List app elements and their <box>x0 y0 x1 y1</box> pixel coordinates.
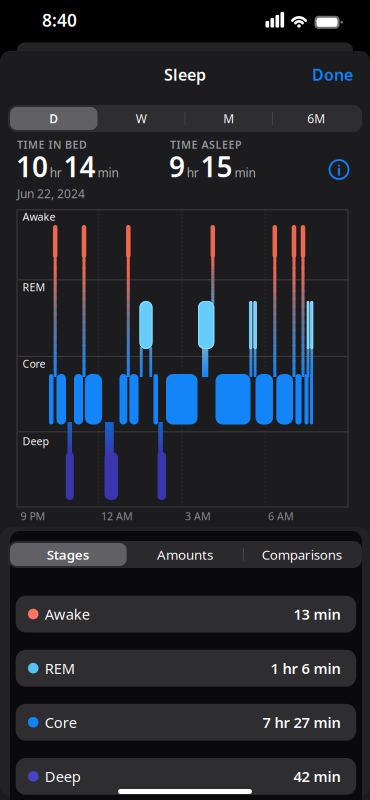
staticText: 9 <box>169 148 185 185</box>
button[interactable]: About Sleep <box>328 158 350 180</box>
staticText: 7 hr 27 min <box>262 713 340 732</box>
staticText: Amounts <box>157 546 213 563</box>
staticText: Stages <box>47 546 90 563</box>
button[interactable]: D <box>10 105 97 132</box>
button[interactable]: REM <box>16 650 356 687</box>
staticText: W <box>136 110 147 126</box>
staticText: Core <box>45 713 77 732</box>
button[interactable]: Stages <box>10 541 127 568</box>
button[interactable]: Deep <box>16 758 356 795</box>
staticText: Sleep <box>164 64 206 85</box>
staticText: Awake <box>45 604 90 624</box>
button[interactable]: Awake <box>16 596 356 632</box>
staticText: D <box>49 110 58 126</box>
staticText: 8:40 <box>42 8 77 31</box>
button[interactable]: 6M <box>272 105 360 132</box>
staticText: Deep <box>45 767 81 786</box>
staticText: 10 <box>16 148 48 185</box>
staticText: Awake <box>22 209 55 224</box>
staticText: Deep <box>22 434 49 448</box>
staticText: 6M <box>307 110 325 126</box>
button[interactable]: Amounts <box>127 541 243 568</box>
staticText: min <box>97 165 118 181</box>
staticText: 13 min <box>293 604 340 624</box>
staticText: min <box>234 165 255 181</box>
staticText: TIME ASLEEP <box>170 137 242 152</box>
button[interactable]: Core <box>16 704 356 741</box>
staticText: Core <box>22 356 45 371</box>
staticText: hr <box>187 165 199 181</box>
staticText: M <box>223 110 234 126</box>
staticText: Jun 22, 2024 <box>17 185 85 201</box>
staticText: Done <box>312 64 353 85</box>
staticText: i <box>337 160 341 180</box>
button[interactable]: W <box>97 105 185 132</box>
staticText: 1 hr 6 min <box>270 658 340 678</box>
button[interactable]: Done <box>283 59 353 89</box>
staticText: hr <box>50 165 62 181</box>
staticText: 14 <box>64 148 96 185</box>
staticText: 15 <box>201 148 233 185</box>
staticText: 12 AM <box>101 509 133 523</box>
staticText: REM <box>22 280 45 294</box>
staticText: Comparisons <box>262 546 342 563</box>
staticText: REM <box>45 658 75 678</box>
staticText: 3 AM <box>185 509 211 523</box>
button[interactable]: Comparisons <box>243 541 360 568</box>
staticText: 42 min <box>293 767 340 786</box>
staticText: 6 AM <box>268 509 294 523</box>
button[interactable]: M <box>185 105 272 132</box>
staticText: TIME IN BED <box>17 137 87 152</box>
staticText: 9 PM <box>20 509 45 523</box>
